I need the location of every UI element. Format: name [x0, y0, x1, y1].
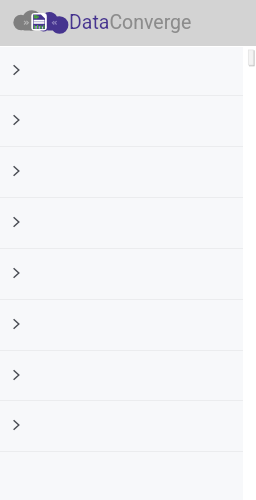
staticText: DataConverge	[69, 11, 192, 34]
button[interactable]: Scroll	[248, 49, 255, 67]
button[interactable]: Open item 1	[0, 47, 243, 95]
button[interactable]: Open item 7	[0, 351, 243, 400]
button[interactable]: Open item 6	[0, 300, 243, 350]
button[interactable]: Open item 5	[0, 249, 243, 299]
button[interactable]: Open item 2	[0, 96, 243, 146]
button[interactable]: Open item 3	[0, 147, 243, 197]
button[interactable]: Open item 8	[0, 401, 243, 451]
button[interactable]: Open item 4	[0, 198, 243, 248]
